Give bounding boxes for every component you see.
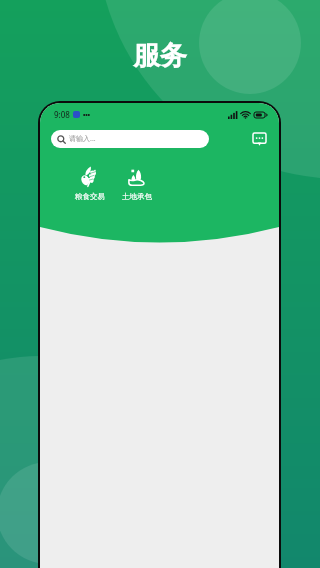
button[interactable]: 请输入... (51, 130, 209, 148)
button[interactable]: Messages (249, 129, 269, 149)
staticText: 服务 (133, 39, 187, 73)
staticText: 粮食交易 (75, 192, 105, 201)
staticText: 土地承包 (122, 192, 152, 201)
staticText: 请输入... (69, 134, 96, 144)
button[interactable]: 粮食交易 (66, 166, 113, 201)
staticText: 9:08 (54, 109, 70, 120)
button[interactable]: 土地承包 (113, 166, 160, 201)
